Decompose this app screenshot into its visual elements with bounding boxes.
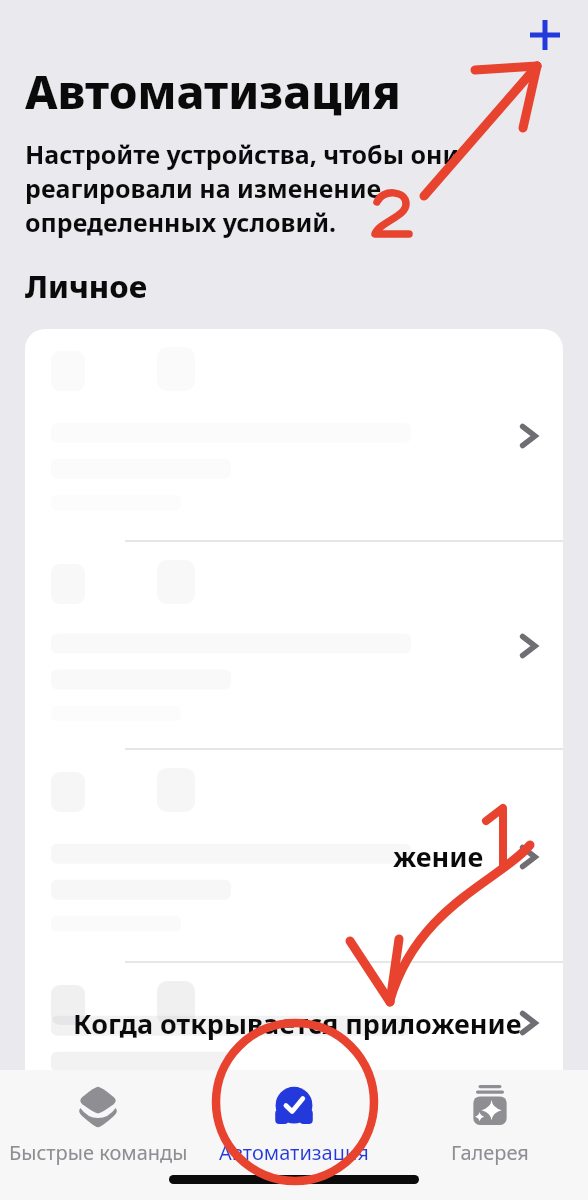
button[interactable]	[25, 542, 563, 750]
other: Быстрые команды	[72, 1084, 124, 1130]
button[interactable]	[25, 329, 563, 542]
button[interactable]: Когда открывается приложение	[25, 963, 563, 1083]
staticText: Когда открывается приложение	[73, 1005, 522, 1042]
other: Галерея	[464, 1084, 516, 1130]
staticText: Галерея	[451, 1139, 529, 1166]
staticText: Быстрые команды	[9, 1139, 188, 1166]
other: Автоматизация	[268, 1084, 320, 1130]
button[interactable]: Добавить	[518, 8, 572, 62]
staticText: жение	[393, 838, 484, 875]
staticText: Автоматизация	[219, 1139, 369, 1166]
button[interactable]: Галерея	[392, 1084, 588, 1166]
button[interactable]: Автоматизация	[196, 1084, 392, 1166]
staticText: Настройте устройства, чтобы они реагиров…	[25, 137, 574, 239]
button[interactable]: жение	[25, 750, 563, 963]
staticText: Автоматизация	[25, 60, 401, 123]
button[interactable]: Быстрые команды	[0, 1084, 196, 1166]
staticText: Личное	[25, 265, 148, 307]
